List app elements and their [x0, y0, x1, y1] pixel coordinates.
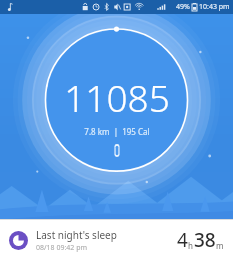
staticText: 49%	[176, 2, 190, 12]
staticText: 11085	[64, 72, 170, 122]
staticText: Last night's sleep	[36, 228, 117, 242]
staticText: m	[216, 240, 224, 251]
staticText: 08/18 09:42 pm	[36, 243, 88, 253]
staticText: 4	[177, 227, 188, 253]
button[interactable]: Last night's sleep	[0, 220, 233, 260]
staticText: 38	[194, 227, 216, 253]
staticText: 10:43 pm	[199, 2, 230, 12]
staticText: h	[188, 240, 193, 251]
staticText: 7.8 km | 195 Cal	[84, 126, 150, 137]
